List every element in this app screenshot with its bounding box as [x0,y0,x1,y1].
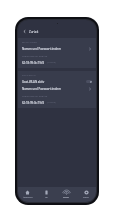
staticText: GAST-WLAN [22,74,36,77]
staticText: Gast-WLAN aktiv [22,80,86,84]
button[interactable]: WLAN [56,187,76,202]
button[interactable]: Namen und Passwort ändern [18,85,96,92]
staticText: Tel [45,196,48,199]
staticText: Übersicht [23,196,33,199]
button[interactable]: Namen und Passwort ändern [18,45,96,52]
staticText: WLAN-NAME [22,41,37,44]
button[interactable]: Übersicht [18,187,37,202]
button[interactable]: Gast-WLAN aktiv [18,78,96,85]
staticText: Namen und Passwort ändern [22,47,88,51]
staticText: (1 more) [47,61,56,64]
other: Zurück [22,29,27,34]
staticText: (1 more) [47,101,56,104]
staticText: WLAN [63,196,69,199]
staticText: Namen und Passwort ändern [22,87,88,91]
button[interactable]: Zurück [18,27,96,36]
button[interactable]: Tel [37,187,56,202]
staticText: VERBUNDENE GERÄTE [22,95,48,98]
staticText: Zurück [29,30,39,34]
staticText: 62:18:99:0c:79:f3 [22,101,45,105]
button[interactable]: Setup [76,187,96,202]
staticText: Setup [83,196,89,199]
staticText: VERBUNDENE GERÄTE [22,55,48,58]
staticText: 62:18:99:0c:79:f3 [22,61,45,65]
